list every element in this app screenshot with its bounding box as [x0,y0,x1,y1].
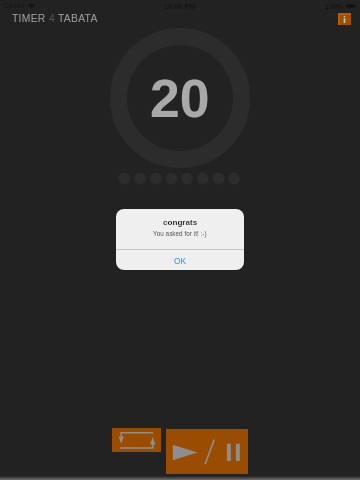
staticText: TIMER [12,13,46,25]
staticText: 100% [325,2,344,10]
button[interactable]: Info [338,13,351,25]
button[interactable]: OK [116,250,244,270]
staticText: 4 [49,13,55,25]
staticText: 20 [150,69,210,129]
button[interactable]: Loop [112,428,161,452]
staticText: Carrier [3,1,25,9]
button[interactable]: Play or pause [166,429,248,474]
staticText: congrats [163,218,198,227]
staticText: You asked for it! :-) [153,230,207,237]
staticText: OK [174,256,187,265]
staticText: TABATA [58,13,98,25]
staticText: 10:06 PM [164,2,196,10]
